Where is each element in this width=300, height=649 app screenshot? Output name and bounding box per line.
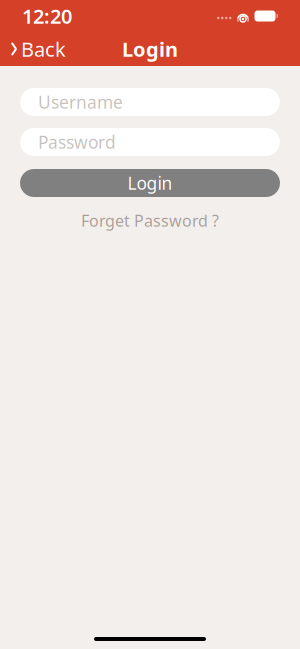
staticText: Login (127, 171, 172, 194)
staticText: Password (38, 130, 116, 153)
staticText: Forget Password ? (81, 210, 219, 231)
staticText: 12:20 (22, 3, 72, 29)
staticText: Back (21, 36, 66, 62)
staticText: Login (122, 36, 178, 62)
button[interactable]: Forget Password ? (71, 206, 229, 235)
button[interactable]: Username (20, 88, 280, 116)
button[interactable]: Login (20, 169, 280, 197)
staticText: Username (38, 90, 123, 113)
button[interactable]: Back (0, 30, 76, 68)
button[interactable]: Password (20, 128, 280, 156)
